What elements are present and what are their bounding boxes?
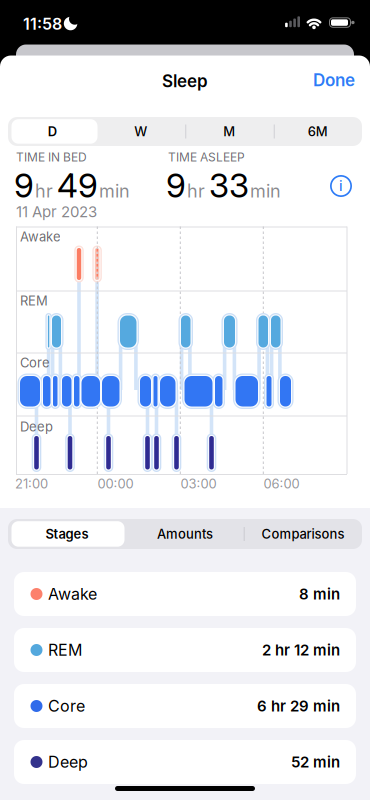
staticText: Stages: [45, 526, 88, 542]
staticText: min: [250, 180, 281, 201]
staticText: Amounts: [157, 526, 213, 542]
staticText: TIME ASLEEP: [168, 150, 245, 164]
staticText: Comparisons: [261, 526, 344, 542]
staticText: 06:00: [263, 476, 299, 491]
staticText: REM: [20, 293, 48, 308]
staticText: D: [48, 124, 57, 139]
button[interactable]: REM: [14, 628, 356, 672]
staticText: 11 Apr 2023: [16, 203, 97, 221]
staticText: min: [99, 180, 130, 201]
staticText: 00:00: [97, 476, 133, 491]
button[interactable]: Stages: [8, 519, 126, 549]
staticText: 52 min: [291, 753, 340, 771]
staticText: 8 min: [299, 585, 340, 603]
staticText: 03:00: [180, 476, 216, 491]
staticText: Awake: [48, 585, 97, 603]
button[interactable]: M: [185, 117, 273, 146]
button[interactable]: Deep: [14, 740, 356, 784]
staticText: Deep: [48, 753, 88, 771]
staticText: Awake: [20, 229, 61, 244]
staticText: 2 hr 12 min: [262, 641, 340, 659]
staticText: Core: [48, 697, 85, 715]
button[interactable]: D: [8, 117, 96, 146]
button[interactable]: Comparisons: [244, 519, 362, 549]
staticText: Core: [20, 355, 50, 370]
button[interactable]: 6M: [273, 117, 362, 146]
button[interactable]: Awake: [14, 572, 356, 616]
staticText: hr: [187, 180, 205, 201]
staticText: 9: [14, 166, 34, 205]
staticText: hr: [35, 180, 53, 201]
staticText: Deep: [20, 419, 53, 434]
button[interactable]: Done: [295, 65, 355, 95]
staticText: M: [223, 124, 235, 139]
staticText: 6M: [308, 124, 328, 139]
staticText: TIME IN BED: [16, 150, 87, 164]
button[interactable]: Core: [14, 684, 356, 728]
staticText: REM: [48, 641, 82, 659]
staticText: 6 hr 29 min: [257, 697, 340, 715]
button[interactable]: Amounts: [126, 519, 244, 549]
staticText: 21:00: [15, 476, 48, 491]
button[interactable]: W: [96, 117, 185, 146]
staticText: i: [339, 178, 343, 194]
staticText: W: [134, 124, 147, 139]
staticText: Sleep: [162, 71, 208, 91]
staticText: 9: [166, 166, 186, 205]
staticText: 33: [209, 166, 249, 205]
staticText: 11:58: [23, 14, 62, 33]
button[interactable]: About sleep data: [326, 171, 356, 201]
staticText: Done: [313, 70, 355, 90]
staticText: 49: [57, 166, 98, 205]
